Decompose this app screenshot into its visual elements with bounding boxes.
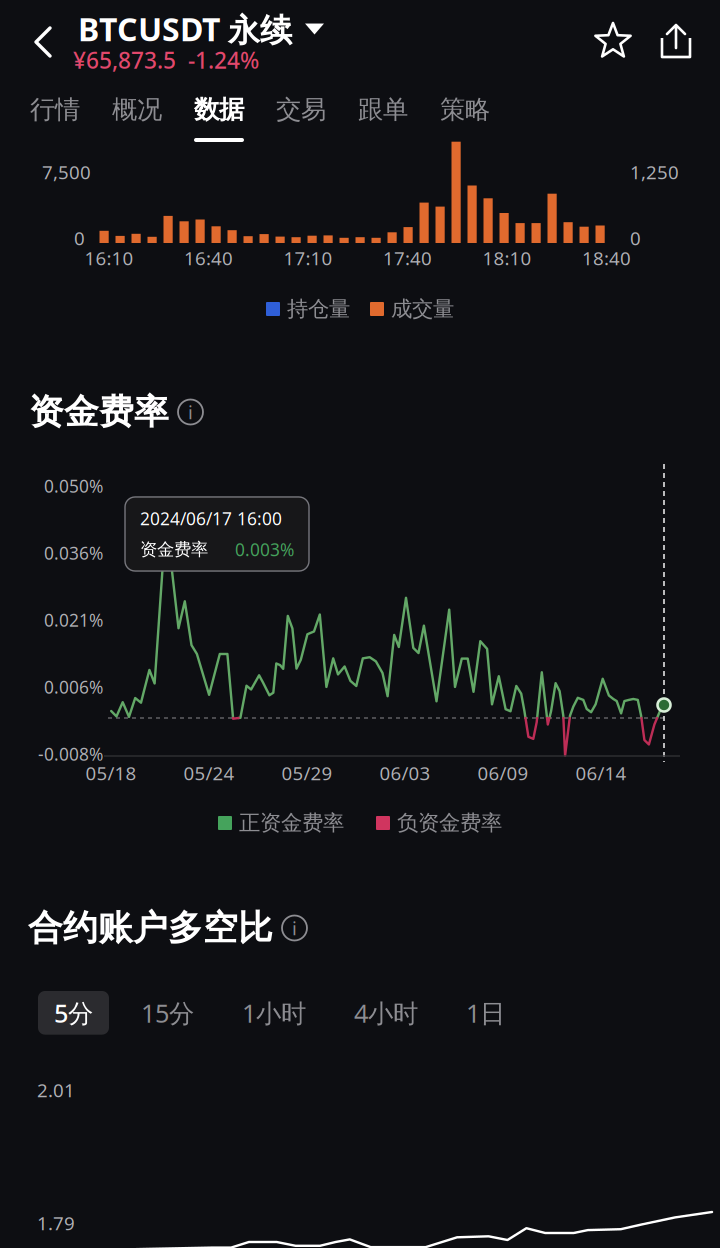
staticText: BTCUSDT 永续	[78, 8, 292, 50]
button[interactable]: Add to favourites	[590, 18, 636, 64]
button[interactable]: 策略	[424, 87, 506, 157]
button[interactable]: Share	[653, 18, 699, 64]
staticText: 1.79	[37, 1211, 75, 1235]
button[interactable]: Back	[22, 18, 66, 66]
staticText: 16:10	[84, 246, 133, 270]
button[interactable]: 1日	[442, 991, 529, 1035]
staticText: 1,250	[630, 160, 679, 184]
staticText: 合约账户多空比	[28, 907, 273, 949]
staticText: -0.008%	[38, 742, 103, 765]
staticText: 交易	[276, 94, 326, 125]
staticText: 资金费率	[140, 539, 208, 560]
staticText: 数据	[194, 94, 244, 125]
button[interactable]: 数据	[178, 87, 260, 157]
button[interactable]: 15分	[117, 991, 218, 1035]
staticText: 策略	[440, 94, 490, 125]
button[interactable]: 1小时	[218, 991, 330, 1035]
staticText: 跟单	[358, 94, 408, 125]
button[interactable]: ¥65,873.5 -1.24%	[73, 42, 259, 78]
staticText: 06/09	[477, 761, 528, 785]
staticText: 18:40	[582, 246, 631, 270]
staticText: 1小时	[242, 996, 306, 1030]
button[interactable]: 4小时	[330, 991, 442, 1035]
staticText: 15分	[141, 996, 194, 1030]
staticText: 正资金费率	[239, 810, 344, 836]
staticText: 5分	[54, 996, 93, 1030]
button[interactable]: 概况	[96, 87, 178, 157]
staticText: 0.021%	[44, 608, 103, 631]
button[interactable]: 5分	[30, 991, 117, 1035]
staticText: 0	[630, 226, 641, 250]
button[interactable]: 交易	[260, 87, 342, 157]
staticText: 1日	[466, 996, 505, 1030]
button[interactable]: 跟单	[342, 87, 424, 157]
staticText: 16:40	[184, 246, 233, 270]
staticText: 0.036%	[44, 541, 103, 564]
staticText: 0	[74, 226, 85, 250]
staticText: 0.006%	[44, 675, 103, 698]
staticText: 资金费率	[29, 391, 169, 433]
staticText: 17:10	[283, 246, 332, 270]
staticText: 06/03	[379, 761, 430, 785]
staticText: 负资金费率	[397, 810, 502, 836]
staticText: 持仓量	[287, 296, 350, 322]
staticText: 05/18	[85, 761, 136, 785]
staticText: 06/14	[575, 761, 626, 785]
staticText: 0.003%	[235, 538, 294, 561]
staticText: 05/29	[281, 761, 332, 785]
staticText: 成交量	[391, 296, 454, 322]
staticText: i	[292, 916, 297, 940]
staticText: i	[188, 400, 193, 424]
staticText: 概况	[112, 94, 162, 125]
staticText: 05/24	[183, 761, 234, 785]
staticText: 0.050%	[44, 474, 103, 497]
staticText: 2.01	[37, 1078, 75, 1102]
button[interactable]: 行情	[14, 87, 96, 157]
button[interactable]: BTCUSDT 永续	[78, 3, 324, 55]
staticText: 17:40	[383, 246, 432, 270]
staticText: 4小时	[354, 996, 418, 1030]
staticText: ¥65,873.5 -1.24%	[73, 45, 259, 75]
staticText: 18:10	[482, 246, 531, 270]
staticText: 行情	[30, 94, 80, 125]
staticText: 7,500	[42, 160, 91, 184]
staticText: 2024/06/17 16:00	[140, 507, 282, 530]
